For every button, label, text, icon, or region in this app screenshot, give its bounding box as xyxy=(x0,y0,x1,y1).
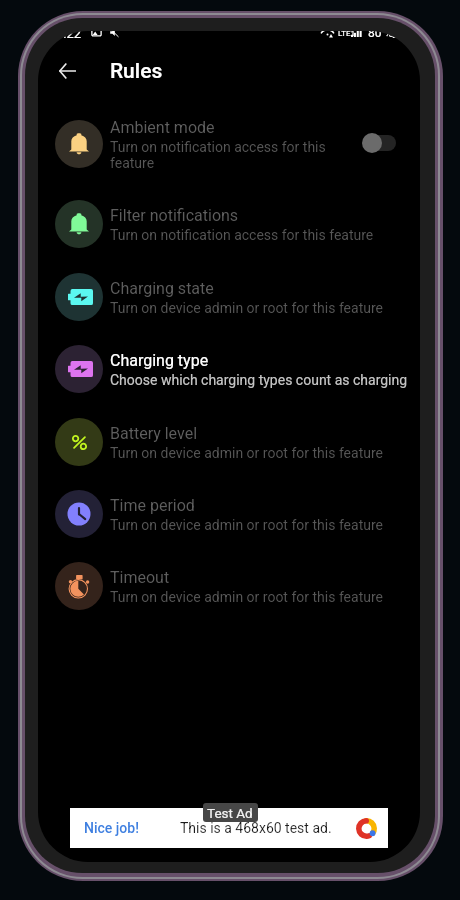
staticText: Charging type xyxy=(110,351,209,370)
button[interactable]: Battery level xyxy=(38,405,420,477)
button[interactable]: Ambient mode xyxy=(38,107,420,179)
staticText: Rules xyxy=(110,59,163,84)
button[interactable]: Filter notifications xyxy=(38,187,420,259)
staticText: Turn on device admin or root for this fe… xyxy=(110,300,410,316)
staticText: Turn on device admin or root for this fe… xyxy=(110,589,410,605)
staticText: Turn on notification access for this fea… xyxy=(110,139,335,171)
button[interactable]: Back xyxy=(45,49,89,93)
button[interactable]: Charging state xyxy=(38,260,420,332)
staticText: Charging state xyxy=(110,279,214,298)
staticText: Battery level xyxy=(110,424,198,443)
staticText: Nice job! xyxy=(84,820,139,836)
staticText: Time period xyxy=(110,496,195,515)
staticText: Turn on notification access for this fea… xyxy=(110,227,410,243)
staticText: Turn on device admin or root for this fe… xyxy=(110,445,410,461)
button[interactable]: Charging type xyxy=(38,332,420,404)
button[interactable]: Time period xyxy=(38,477,420,549)
button[interactable]: Timeout xyxy=(38,549,420,621)
staticText: This is a 468x60 test ad. xyxy=(180,820,332,836)
staticText: Choose which charging types count as cha… xyxy=(110,372,410,388)
staticText: Ambient mode xyxy=(110,118,215,137)
staticText: Turn on device admin or root for this fe… xyxy=(110,517,410,533)
staticText: 9:22 xyxy=(56,31,82,41)
button[interactable]: Toggle ambient mode xyxy=(355,126,403,160)
staticText: Test Ad xyxy=(207,805,253,821)
staticText: Timeout xyxy=(110,568,170,587)
staticText: LTE1 xyxy=(338,31,356,38)
staticText: 80 % xyxy=(368,31,394,40)
staticText: Filter notifications xyxy=(110,206,239,225)
button[interactable]: Nice job! xyxy=(70,808,388,848)
